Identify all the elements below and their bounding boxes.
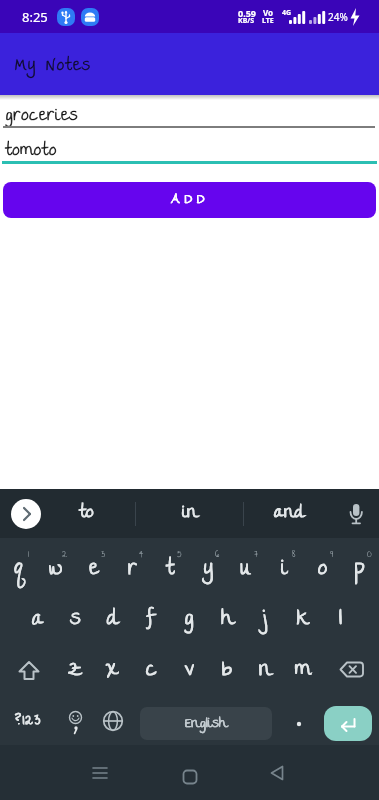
staticText: k: [297, 601, 310, 640]
staticText: t: [166, 551, 174, 590]
staticText: 1: [28, 545, 30, 565]
button[interactable]: g: [170, 595, 208, 645]
staticText: r: [128, 551, 137, 590]
staticText: 8: [292, 545, 296, 565]
staticText: 7: [254, 545, 258, 565]
staticText: 0: [367, 545, 372, 565]
button[interactable]: h: [208, 595, 246, 645]
staticText: s: [70, 601, 81, 640]
staticText: a: [32, 601, 44, 640]
button[interactable]: groceries: [0, 95, 379, 131]
staticText: q: [14, 551, 23, 590]
staticText: x: [106, 652, 120, 691]
staticText: y: [204, 551, 213, 590]
staticText: n: [259, 652, 272, 691]
button[interactable]: j: [246, 595, 284, 645]
button[interactable]: z: [57, 646, 94, 696]
staticText: u: [240, 551, 252, 590]
button[interactable]: English: [140, 707, 272, 740]
button[interactable]: in: [159, 489, 221, 538]
staticText: a: [32, 601, 44, 640]
staticText: j: [263, 601, 267, 640]
button[interactable]: to: [55, 489, 117, 538]
button[interactable]: ?123: [0, 697, 56, 745]
button[interactable]: ADD: [3, 182, 376, 218]
staticText: LTE: [262, 16, 274, 26]
button[interactable]: q: [0, 545, 37, 595]
staticText: m: [295, 652, 311, 691]
staticText: i: [281, 551, 287, 590]
button[interactable]: m: [284, 646, 322, 696]
staticText: m: [295, 652, 311, 691]
staticText: c: [146, 652, 157, 691]
button[interactable]: tomoto: [0, 131, 379, 165]
button[interactable]: s: [56, 595, 94, 645]
button[interactable]: [341, 499, 371, 529]
staticText: y: [204, 551, 213, 590]
button[interactable]: o: [303, 545, 341, 595]
staticText: and: [274, 497, 306, 530]
staticText: 4G: [282, 8, 292, 18]
button[interactable]: a: [19, 595, 56, 645]
button[interactable]: [94, 697, 132, 745]
staticText: w: [49, 551, 63, 590]
staticText: p: [355, 551, 365, 590]
button[interactable]: l: [322, 595, 360, 645]
staticText: KB/S: [238, 16, 255, 26]
button[interactable]: [11, 499, 41, 529]
staticText: g: [184, 601, 194, 640]
staticText: in: [182, 497, 198, 530]
staticText: ADD: [171, 187, 209, 213]
button[interactable]: v: [170, 646, 208, 696]
staticText: in: [182, 497, 198, 530]
staticText: ADD: [171, 187, 209, 213]
button[interactable]: y: [189, 545, 227, 595]
staticText: i: [281, 551, 287, 590]
staticText: groceries: [5, 101, 79, 132]
button[interactable]: p: [341, 545, 379, 595]
button[interactable]: d: [94, 595, 132, 645]
button[interactable]: c: [132, 646, 170, 696]
button[interactable]: e: [75, 545, 113, 595]
staticText: v: [185, 652, 194, 691]
staticText: to: [79, 497, 94, 530]
button[interactable]: b: [208, 646, 246, 696]
staticText: 24%: [328, 10, 348, 24]
button[interactable]: f: [132, 595, 170, 645]
staticText: t: [166, 551, 174, 590]
staticText: s: [70, 601, 81, 640]
button[interactable]: [263, 759, 291, 787]
staticText: English: [185, 711, 227, 737]
staticText: f: [146, 601, 157, 640]
staticText: 2: [62, 545, 68, 565]
staticText: h: [221, 601, 234, 640]
button[interactable]: x: [94, 646, 132, 696]
button[interactable]: [86, 759, 114, 787]
staticText: q: [14, 551, 23, 590]
staticText: tomoto: [5, 136, 57, 167]
staticText: r: [128, 551, 137, 590]
staticText: v: [185, 652, 194, 691]
button[interactable]: k: [284, 595, 322, 645]
staticText: l: [339, 601, 343, 640]
button[interactable]: u: [227, 545, 265, 595]
button[interactable]: r: [113, 545, 151, 595]
button[interactable]: [322, 646, 379, 696]
button[interactable]: i: [265, 545, 303, 595]
staticText: k: [297, 601, 310, 640]
button[interactable]: and: [259, 489, 321, 538]
button[interactable]: [324, 706, 372, 741]
button[interactable]: [56, 697, 94, 745]
button[interactable]: n: [246, 646, 284, 696]
button[interactable]: w: [37, 545, 75, 595]
staticText: to: [79, 497, 94, 530]
staticText: e: [89, 551, 99, 590]
staticText: My Notes: [15, 51, 92, 82]
button[interactable]: [176, 763, 204, 791]
staticText: b: [222, 652, 232, 691]
staticText: groceries: [5, 101, 79, 132]
button[interactable]: [281, 697, 317, 745]
button[interactable]: t: [151, 545, 189, 595]
staticText: z: [68, 652, 83, 691]
button[interactable]: [0, 646, 57, 696]
